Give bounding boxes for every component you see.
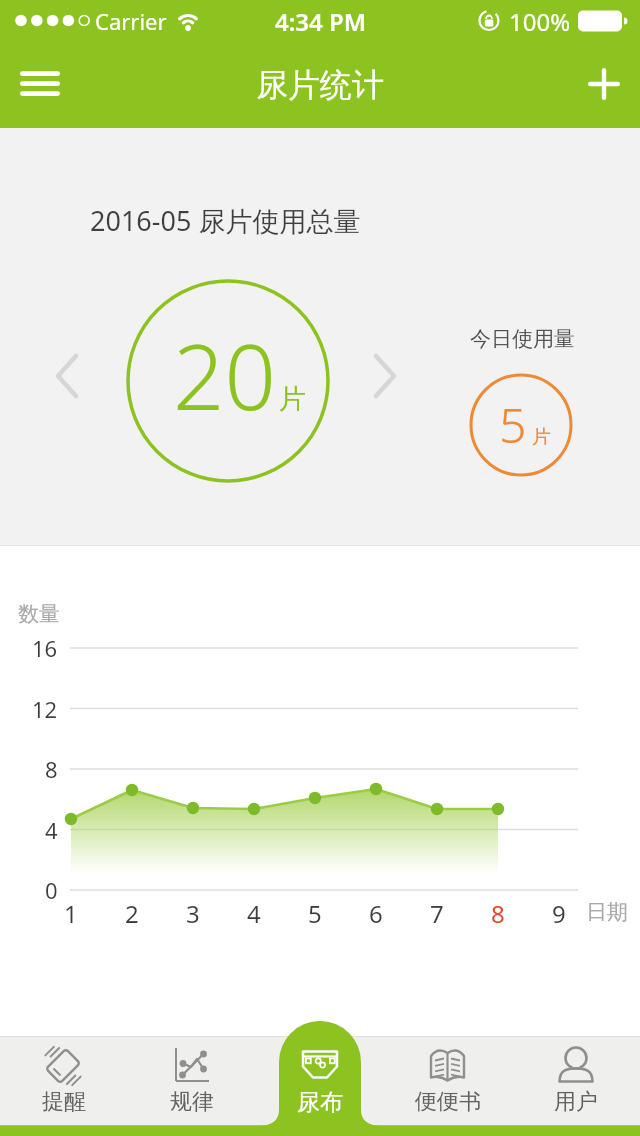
staticText: 日期 [586,899,628,925]
staticText: 4:34 PM [275,5,367,38]
staticText: 8 [491,897,505,930]
staticText: 100% [509,5,571,38]
staticText: 5 [499,392,527,457]
button[interactable] [0,1036,128,1136]
staticText: 3 [186,897,200,930]
button[interactable] [128,1036,256,1136]
staticText: 1 [64,897,78,930]
button[interactable] [40,348,90,404]
staticText: 4 [45,815,58,845]
staticText: 提醒 [42,1088,86,1116]
staticText: 12 [32,694,58,724]
staticText: Carrier [95,6,167,36]
staticText: 片 [532,425,551,449]
button[interactable] [358,348,408,404]
staticText: 5 [308,897,322,930]
staticText: 2016-05 尿片使用总量 [90,202,361,239]
button[interactable] [578,58,630,110]
button[interactable] [256,1021,384,1136]
staticText: 尿片统计 [256,65,384,105]
staticText: 7 [430,897,444,930]
staticText: 便便书 [415,1088,481,1116]
staticText: 9 [552,897,566,930]
button[interactable] [384,1036,512,1136]
staticText: 尿布 [297,1088,343,1117]
staticText: 0 [45,875,58,905]
staticText: 8 [45,754,58,784]
button[interactable] [10,58,70,110]
staticText: 用户 [554,1088,598,1116]
staticText: 6 [369,897,383,930]
staticText: 4 [247,897,261,930]
staticText: 片 [279,382,306,416]
staticText: 16 [32,633,58,663]
staticText: 20 [173,314,276,437]
staticText: 2 [125,897,139,930]
button[interactable] [512,1036,640,1136]
staticText: 数量 [18,601,60,627]
staticText: 今日使用量 [470,326,575,352]
staticText: 规律 [170,1088,214,1116]
